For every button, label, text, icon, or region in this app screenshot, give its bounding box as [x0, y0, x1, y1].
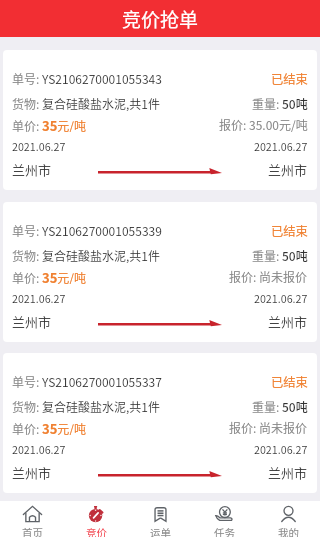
- staticText: 任务: [214, 525, 235, 537]
- staticText: 单号: YS2106270001055343: [12, 70, 162, 86]
- staticText: 首页: [22, 525, 43, 537]
- staticText: 单价: 35元/吨: [12, 419, 87, 435]
- button[interactable]: 运单: [128, 501, 192, 543]
- staticText: 报价: 尚未报价: [229, 419, 308, 435]
- staticText: 兰州市: [12, 160, 52, 178]
- staticText: 报价: 尚未报价: [229, 268, 308, 284]
- staticText: 货物: 复合硅酸盐水泥,共1件: [12, 95, 161, 111]
- staticText: 兰州市: [268, 160, 308, 178]
- staticText: 2021.06.27: [254, 442, 308, 457]
- staticText: 2021.06.27: [12, 291, 66, 306]
- staticText: 兰州市: [12, 463, 52, 481]
- button[interactable]: 单号: YS2106270001055343: [3, 50, 317, 190]
- staticText: 2021.06.27: [12, 442, 66, 457]
- staticText: 已结束: [271, 70, 308, 86]
- button[interactable]: 我的: [256, 501, 320, 543]
- button[interactable]: 首页: [0, 501, 64, 543]
- staticText: 重量: 50吨: [252, 398, 308, 414]
- staticText: 2021.06.27: [254, 139, 308, 154]
- staticText: 兰州市: [268, 463, 308, 481]
- button[interactable]: 单号: YS2106270001055339: [3, 202, 317, 342]
- staticText: 兰州市: [268, 312, 308, 330]
- staticText: 货物: 复合硅酸盐水泥,共1件: [12, 247, 161, 263]
- staticText: 运单: [150, 525, 171, 537]
- staticText: 单价: 35元/吨: [12, 116, 87, 132]
- staticText: 重量: 50吨: [252, 247, 308, 263]
- staticText: 报价: 35.00元/吨: [219, 116, 308, 132]
- staticText: 单号: YS2106270001055337: [12, 373, 162, 389]
- staticText: 重量: 50吨: [252, 95, 308, 111]
- staticText: 竞价: [86, 525, 107, 537]
- staticText: 2021.06.27: [254, 291, 308, 306]
- staticText: 我的: [278, 525, 299, 537]
- staticText: 货物: 复合硅酸盐水泥,共1件: [12, 398, 161, 414]
- staticText: 已结束: [271, 373, 308, 389]
- staticText: 已结束: [271, 222, 308, 238]
- staticText: 单价: 35元/吨: [12, 268, 87, 284]
- button[interactable]: 单号: YS2106270001055337: [3, 353, 317, 493]
- staticText: 竞价抢单: [122, 5, 199, 33]
- button[interactable]: 任务: [192, 501, 256, 543]
- staticText: 单号: YS2106270001055339: [12, 222, 162, 238]
- button[interactable]: 竞价: [64, 501, 128, 543]
- button[interactable]: 竞价抢单: [0, 0, 320, 37]
- staticText: 2021.06.27: [12, 139, 66, 154]
- staticText: 兰州市: [12, 312, 52, 330]
